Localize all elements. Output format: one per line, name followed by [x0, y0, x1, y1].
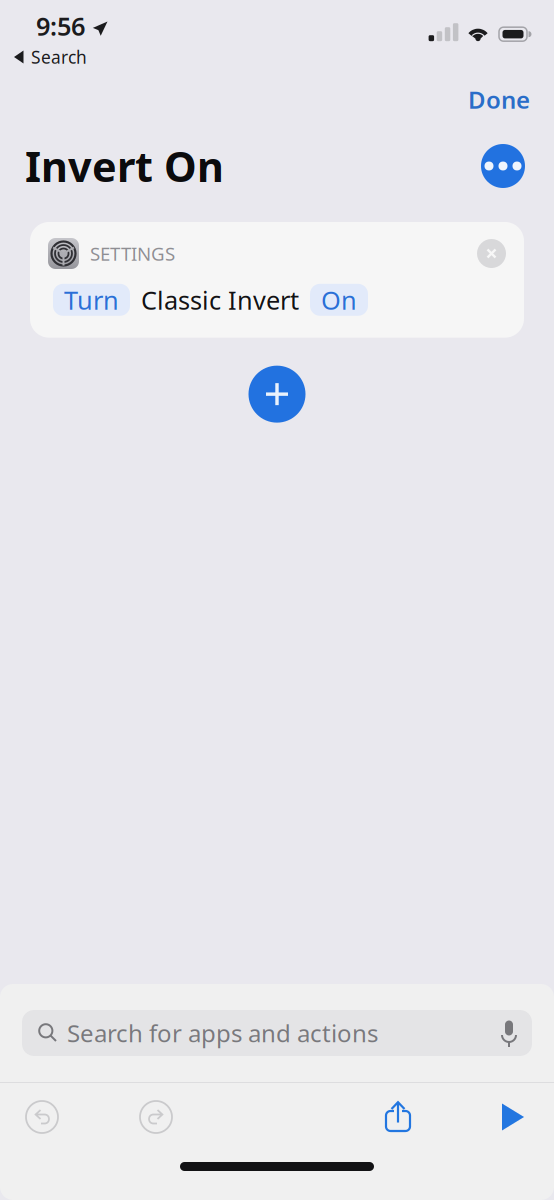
staticText: Search: [31, 45, 87, 68]
button[interactable]: Add action: [248, 366, 305, 423]
staticText: Done: [468, 84, 530, 115]
staticText: SETTINGS: [90, 241, 175, 266]
staticText: Turn: [64, 283, 119, 317]
button[interactable]: Search for apps and actions: [22, 1010, 532, 1056]
button[interactable]: Run shortcut: [501, 1103, 525, 1131]
button[interactable]: Remove action: [477, 239, 506, 268]
staticText: 9:56: [36, 9, 85, 43]
staticText: Classic Invert: [141, 283, 299, 317]
button[interactable]: Share: [384, 1099, 412, 1135]
staticText: Invert On: [25, 139, 224, 193]
staticText: On: [321, 283, 357, 317]
button[interactable]: Undo: [26, 1101, 58, 1133]
staticText: Search for apps and actions: [67, 1017, 378, 1049]
button[interactable]: More options: [481, 144, 525, 188]
button[interactable]: Redo: [140, 1101, 172, 1133]
button[interactable]: Done: [456, 76, 542, 123]
